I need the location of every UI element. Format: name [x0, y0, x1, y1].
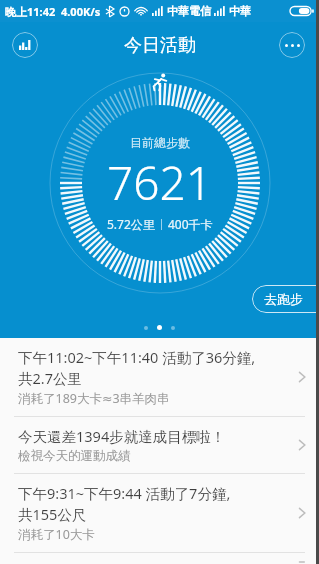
staticText: 400千卡: [168, 216, 213, 232]
button[interactable]: More options: [279, 32, 305, 58]
staticText: 中華電信: [167, 4, 211, 18]
staticText: 檢視今天的運動成績: [18, 448, 131, 464]
staticText: 下午9:31~下午9:44 活動了7分鐘, 共155公尺: [18, 483, 231, 524]
button[interactable]: 去跑步: [252, 285, 319, 313]
button[interactable]: Statistics: [12, 32, 38, 58]
staticText: 消耗了189大卡≈3串羊肉串: [18, 390, 170, 407]
staticText: 目前總步數: [130, 135, 190, 150]
staticText: 中華: [229, 4, 251, 18]
staticText: 5.72公里: [107, 216, 155, 232]
button[interactable]: 下午11:02~下午11:40 活動了36分鐘, 共2.7公里: [0, 338, 319, 416]
staticText: 晚上11:42 4.00K/s: [5, 4, 101, 19]
staticText: 去跑步: [264, 291, 303, 307]
button[interactable]: 下午7:53~下午8:34 活動了11分鐘, 共221公尺: [0, 553, 319, 564]
button[interactable]: 下午9:31~下午9:44 活動了7分鐘, 共155公尺: [0, 474, 319, 552]
button[interactable]: 今天還差1394步就達成目標啦！: [0, 417, 319, 473]
staticText: 下午11:02~下午11:40 活動了36分鐘, 共2.7公里: [18, 347, 256, 388]
staticText: 今天還差1394步就達成目標啦！: [18, 426, 226, 446]
staticText: 消耗了10大卡: [18, 526, 95, 543]
staticText: 7621: [107, 151, 213, 214]
staticText: 今日活動: [124, 34, 196, 57]
